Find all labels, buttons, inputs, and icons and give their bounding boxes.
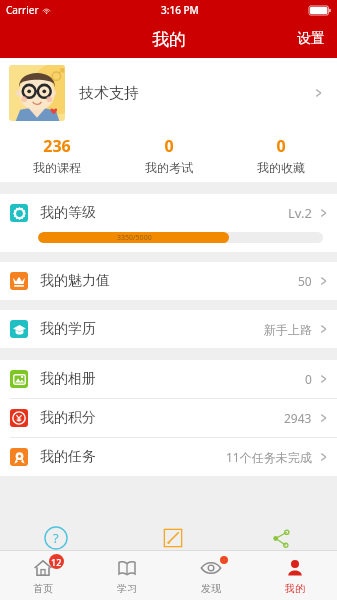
- staticText: 我的: [285, 582, 305, 595]
- button[interactable]: 我的任务: [0, 438, 337, 476]
- staticText: 12: [51, 556, 62, 568]
- staticText: 我的学历: [40, 320, 96, 338]
- staticText: 我的任务: [40, 448, 96, 466]
- button[interactable]: 我的魅力值: [0, 262, 337, 300]
- button[interactable]: 技术支持: [0, 58, 337, 128]
- button[interactable]: 我的等级: [0, 194, 337, 252]
- staticText: 我的: [152, 29, 186, 50]
- button[interactable]: 我的: [253, 551, 337, 600]
- staticText: Lv.2: [288, 204, 312, 222]
- staticText: 我的收藏: [257, 160, 305, 175]
- button[interactable]: 12: [0, 551, 85, 600]
- staticText: 我的考试: [145, 160, 193, 175]
- staticText: 我的相册: [40, 370, 96, 388]
- button[interactable]: 设置: [285, 24, 337, 54]
- staticText: 3350/5000: [117, 233, 152, 243]
- staticText: 236: [43, 135, 71, 157]
- staticText: 2943: [284, 410, 312, 426]
- button[interactable]: 学习: [85, 551, 169, 600]
- staticText: 设置: [297, 30, 325, 48]
- staticText: 发现: [201, 582, 221, 595]
- button[interactable]: Share: [269, 526, 293, 550]
- button[interactable]: 236: [0, 128, 113, 182]
- staticText: 我的等级: [40, 204, 96, 222]
- button[interactable]: Edit: [161, 526, 185, 550]
- button[interactable]: Help: [44, 526, 68, 550]
- staticText: 学习: [117, 582, 137, 595]
- staticText: 3:16 PM: [161, 3, 199, 17]
- button[interactable]: 0: [225, 128, 337, 182]
- staticText: 11个任务未完成: [226, 449, 312, 465]
- button[interactable]: 0: [113, 128, 225, 182]
- button[interactable]: 发现: [169, 551, 253, 600]
- button[interactable]: 我的相册: [0, 360, 337, 398]
- staticText: 首页: [33, 582, 53, 595]
- staticText: 0: [164, 135, 174, 157]
- staticText: 技术支持: [79, 84, 139, 103]
- staticText: 0: [276, 135, 286, 157]
- staticText: 我的积分: [40, 409, 96, 427]
- staticText: 我的魅力值: [40, 272, 110, 290]
- button[interactable]: 我的学历: [0, 310, 337, 348]
- staticText: 我的课程: [33, 160, 81, 175]
- staticText: ?: [53, 529, 59, 547]
- button[interactable]: 我的积分: [0, 399, 337, 437]
- staticText: Carrier: [6, 3, 39, 17]
- staticText: 新手上路: [264, 322, 312, 337]
- staticText: 50: [298, 273, 312, 289]
- staticText: 0: [305, 371, 312, 387]
